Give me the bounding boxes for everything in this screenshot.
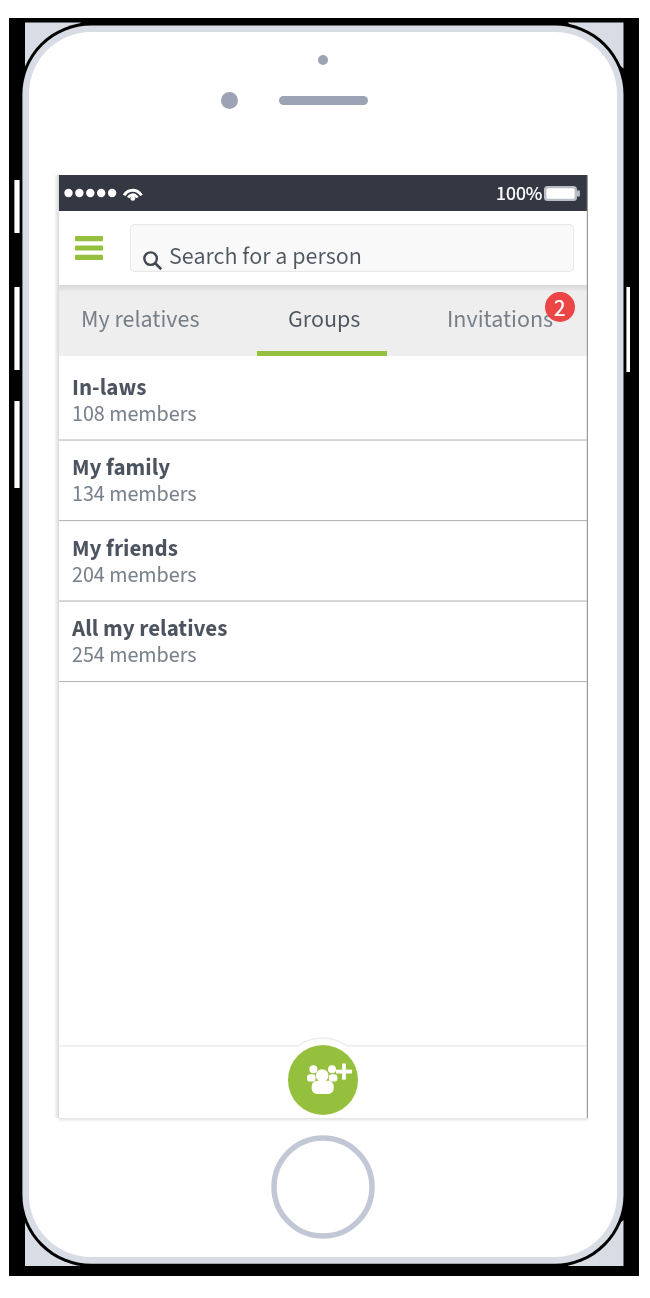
staticText: 108 members	[72, 398, 197, 429]
button[interactable]: In-laws	[59, 360, 588, 441]
staticText: 204 members	[72, 559, 197, 590]
staticText: 2	[554, 292, 566, 322]
staticText: Search for a person	[169, 239, 362, 272]
button[interactable]: Invitations	[411, 285, 588, 355]
staticText: My relatives	[81, 302, 200, 336]
staticText: In-laws	[72, 371, 147, 404]
button[interactable]: Groups	[235, 285, 411, 355]
staticText: Invitations	[447, 302, 554, 336]
button[interactable]: My friends	[59, 521, 588, 602]
staticText: My friends	[72, 532, 178, 565]
staticText: All my relatives	[72, 612, 228, 645]
button[interactable]: My family	[59, 440, 588, 521]
button[interactable]: Open navigation menu	[59, 224, 119, 272]
staticText: 254 members	[72, 639, 197, 670]
button[interactable]: Add new group	[288, 1045, 358, 1115]
button[interactable]: All my relatives	[59, 601, 588, 682]
button[interactable]: Search for a person	[130, 224, 574, 272]
staticText: My family	[72, 451, 171, 484]
staticText: 100%	[496, 180, 543, 208]
button[interactable]: My relatives	[59, 285, 235, 355]
staticText: 134 members	[72, 478, 197, 509]
staticText: Groups	[288, 302, 361, 336]
